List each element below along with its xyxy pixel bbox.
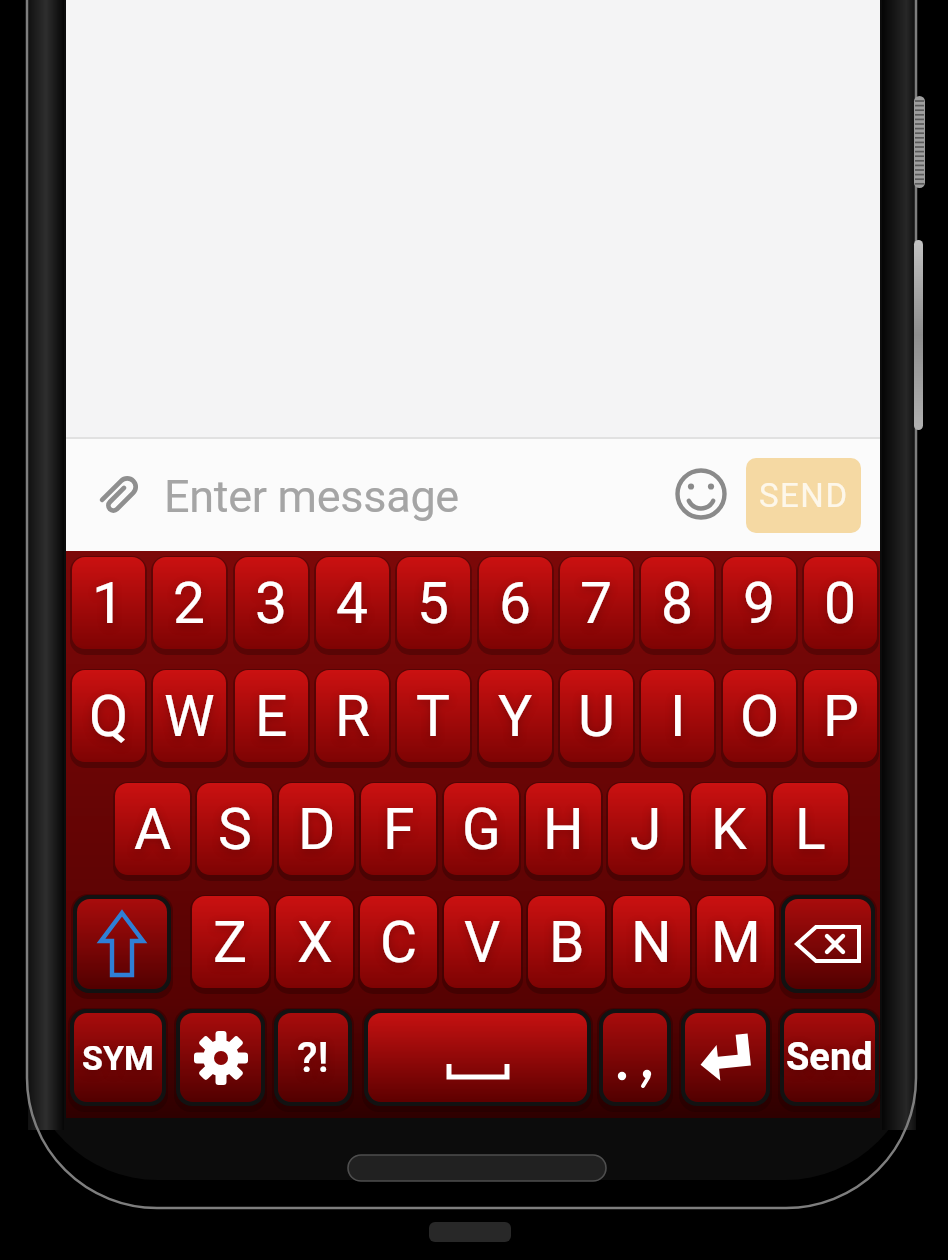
staticText: SEND [759, 476, 849, 515]
staticText: Y [498, 683, 533, 750]
staticText: 8 [661, 570, 694, 637]
staticText: Q [89, 683, 129, 750]
button[interactable] [785, 899, 871, 989]
staticText: Enter message [164, 470, 459, 523]
staticText: W [164, 683, 215, 750]
button[interactable]: 5 [397, 557, 470, 649]
staticText: J [630, 796, 662, 863]
staticText: I [670, 683, 686, 750]
button[interactable]: N [613, 896, 690, 988]
staticText: N [631, 909, 672, 976]
button[interactable]: W [153, 670, 226, 762]
button[interactable] [603, 1013, 667, 1102]
staticText: Z [213, 909, 248, 976]
button[interactable]: U [560, 670, 633, 762]
staticText: 9 [743, 570, 776, 637]
staticText: V [464, 909, 501, 976]
staticText: ?! [297, 1033, 329, 1082]
staticText: O [740, 683, 780, 750]
button[interactable]: C [360, 896, 437, 988]
button[interactable]: E [235, 670, 308, 762]
button[interactable]: A [115, 783, 190, 875]
staticText: A [134, 796, 172, 863]
button[interactable]: 9 [723, 557, 796, 649]
staticText: D [298, 796, 336, 863]
button[interactable]: P [804, 670, 877, 762]
button[interactable] [180, 1013, 261, 1102]
button[interactable]: Z [192, 896, 269, 988]
button[interactable]: ?! [278, 1013, 348, 1102]
button[interactable]: 3 [235, 557, 308, 649]
button[interactable]: G [444, 783, 519, 875]
button[interactable]: B [528, 896, 605, 988]
button[interactable]: S [197, 783, 272, 875]
button[interactable]: R [316, 670, 389, 762]
staticText: S [218, 796, 252, 863]
button[interactable]: Q [72, 670, 145, 762]
button[interactable]: SYM [74, 1013, 162, 1102]
button[interactable]: X [276, 896, 353, 988]
staticText: 0 [824, 570, 857, 637]
button[interactable] [368, 1013, 587, 1102]
button[interactable]: Send [784, 1013, 875, 1102]
button[interactable]: T [397, 670, 470, 762]
staticText: Send [786, 1035, 873, 1080]
button[interactable]: L [773, 783, 848, 875]
button[interactable]: 2 [153, 557, 226, 649]
staticText: X [297, 909, 333, 976]
staticText: R [335, 683, 371, 750]
staticText: 3 [255, 570, 288, 637]
button[interactable]: J [608, 783, 683, 875]
button[interactable]: 7 [560, 557, 633, 649]
button[interactable]: 1 [72, 557, 145, 649]
staticText: L [795, 796, 826, 863]
staticText: 6 [499, 570, 532, 637]
button[interactable] [66, 439, 880, 551]
button[interactable]: 4 [316, 557, 389, 649]
staticText: SYM [82, 1038, 154, 1078]
button[interactable]: 8 [641, 557, 714, 649]
staticText: H [543, 796, 584, 863]
button[interactable]: D [279, 783, 354, 875]
button[interactable]: V [444, 896, 521, 988]
button[interactable]: M [697, 896, 774, 988]
staticText: 5 [417, 570, 450, 637]
button[interactable] [77, 899, 167, 989]
button[interactable]: Y [479, 670, 552, 762]
staticText: F [383, 796, 415, 863]
staticText: M [711, 909, 761, 976]
button[interactable]: O [723, 670, 796, 762]
staticText: 7 [580, 570, 613, 637]
staticText: E [255, 683, 288, 750]
button[interactable]: SEND [746, 458, 861, 533]
staticText: K [711, 796, 747, 863]
staticText: G [462, 796, 501, 863]
staticText: T [416, 683, 451, 750]
staticText: 4 [336, 570, 369, 637]
button[interactable]: 6 [479, 557, 552, 649]
button[interactable]: 0 [804, 557, 877, 649]
button[interactable]: K [691, 783, 766, 875]
staticText: 2 [173, 570, 206, 637]
staticText: P [823, 683, 859, 750]
button[interactable]: I [641, 670, 714, 762]
button[interactable] [685, 1013, 766, 1102]
button[interactable]: F [361, 783, 436, 875]
staticText: C [380, 909, 418, 976]
button[interactable]: H [526, 783, 601, 875]
staticText: U [578, 683, 615, 750]
staticText: B [549, 909, 585, 976]
staticText: 1 [92, 570, 125, 637]
